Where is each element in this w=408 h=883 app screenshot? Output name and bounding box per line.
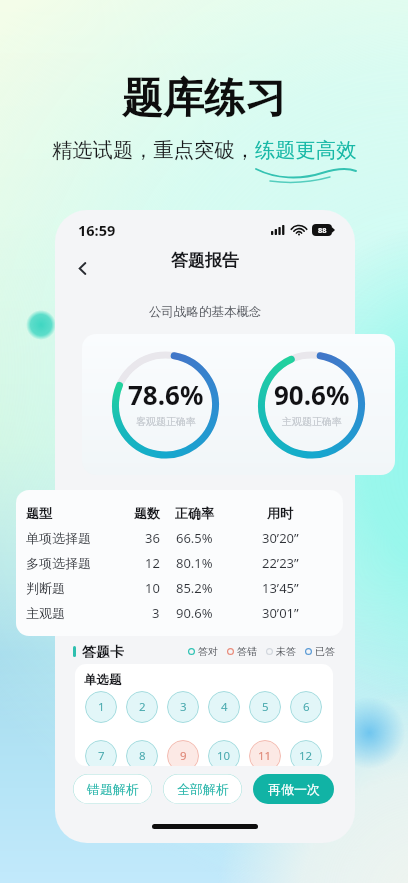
staticText: 1 — [98, 699, 105, 715]
staticText: 答题报告 — [171, 250, 239, 271]
staticText: 3 — [180, 699, 187, 715]
button[interactable]: 错题解析 — [73, 774, 152, 804]
button[interactable]: 7 — [85, 740, 117, 766]
staticText: 多项选择题 — [26, 555, 91, 571]
staticText: 判断题 — [26, 580, 65, 596]
staticText: 6 — [303, 699, 310, 715]
staticText: 未答 — [276, 645, 296, 658]
staticText: 8 — [139, 748, 146, 764]
staticText: 30’01” — [262, 604, 299, 622]
button[interactable]: 6 — [290, 691, 322, 723]
staticText: 再做一次 — [268, 781, 320, 797]
staticText: 主观题正确率 — [282, 415, 342, 428]
staticText: 公司战略的基本概念 — [149, 304, 262, 320]
staticText: 正确率 — [175, 505, 214, 521]
staticText: 主观题 — [26, 605, 65, 621]
staticText: 9 — [180, 748, 187, 764]
staticText: 85.2% — [176, 579, 213, 597]
button[interactable]: 再做一次 — [253, 774, 334, 804]
staticText: 12 — [145, 554, 160, 572]
staticText: 题型 — [26, 505, 52, 521]
staticText: 用时 — [267, 505, 293, 521]
staticText: 答对 — [198, 645, 218, 658]
staticText: 已答 — [315, 645, 335, 658]
button[interactable]: 全部解析 — [163, 774, 242, 804]
staticText: 66.5% — [176, 529, 213, 547]
staticText: 90.6% — [176, 604, 213, 622]
staticText: 4 — [221, 699, 228, 715]
staticText: 客观题正确率 — [136, 415, 196, 428]
button[interactable]: 8 — [126, 740, 158, 766]
staticText: 12 — [299, 748, 313, 764]
button[interactable]: 5 — [249, 691, 281, 723]
staticText: 11 — [258, 748, 272, 764]
staticText: 7 — [98, 748, 105, 764]
button[interactable]: 4 — [208, 691, 240, 723]
staticText: 30’20” — [262, 529, 299, 547]
staticText: 13’45” — [262, 579, 299, 597]
button[interactable]: 10 — [208, 740, 240, 766]
button[interactable]: 9 — [167, 740, 199, 766]
staticText: 单项选择题 — [26, 530, 91, 546]
button[interactable]: Back — [69, 255, 95, 281]
button[interactable]: 1 — [85, 691, 117, 723]
button[interactable]: 3 — [167, 691, 199, 723]
staticText: 2 — [139, 699, 146, 715]
staticText: 10 — [145, 579, 160, 597]
staticText: 题库练习 — [122, 73, 286, 125]
button[interactable]: 12 — [290, 740, 322, 766]
button[interactable]: 11 — [249, 740, 281, 766]
staticText: 90.6% — [274, 377, 350, 412]
staticText: 16:59 — [78, 220, 116, 240]
staticText: 答题卡 — [82, 644, 124, 658]
staticText: 错题解析 — [87, 781, 139, 797]
staticText: 单选题 — [84, 672, 122, 688]
staticText: 88 — [318, 225, 327, 235]
staticText: 22’23” — [262, 554, 299, 572]
staticText: 精选试题，重点突破，练题更高效 — [52, 137, 357, 163]
staticText: 答错 — [237, 645, 257, 658]
staticText: 78.6% — [128, 377, 204, 412]
button[interactable]: 2 — [126, 691, 158, 723]
staticText: 5 — [262, 699, 269, 715]
staticText: 题数 — [134, 505, 160, 521]
staticText: 36 — [145, 529, 160, 547]
staticText: 3 — [152, 604, 160, 622]
staticText: 全部解析 — [177, 781, 229, 797]
staticText: 10 — [217, 748, 231, 764]
staticText: 80.1% — [176, 554, 213, 572]
